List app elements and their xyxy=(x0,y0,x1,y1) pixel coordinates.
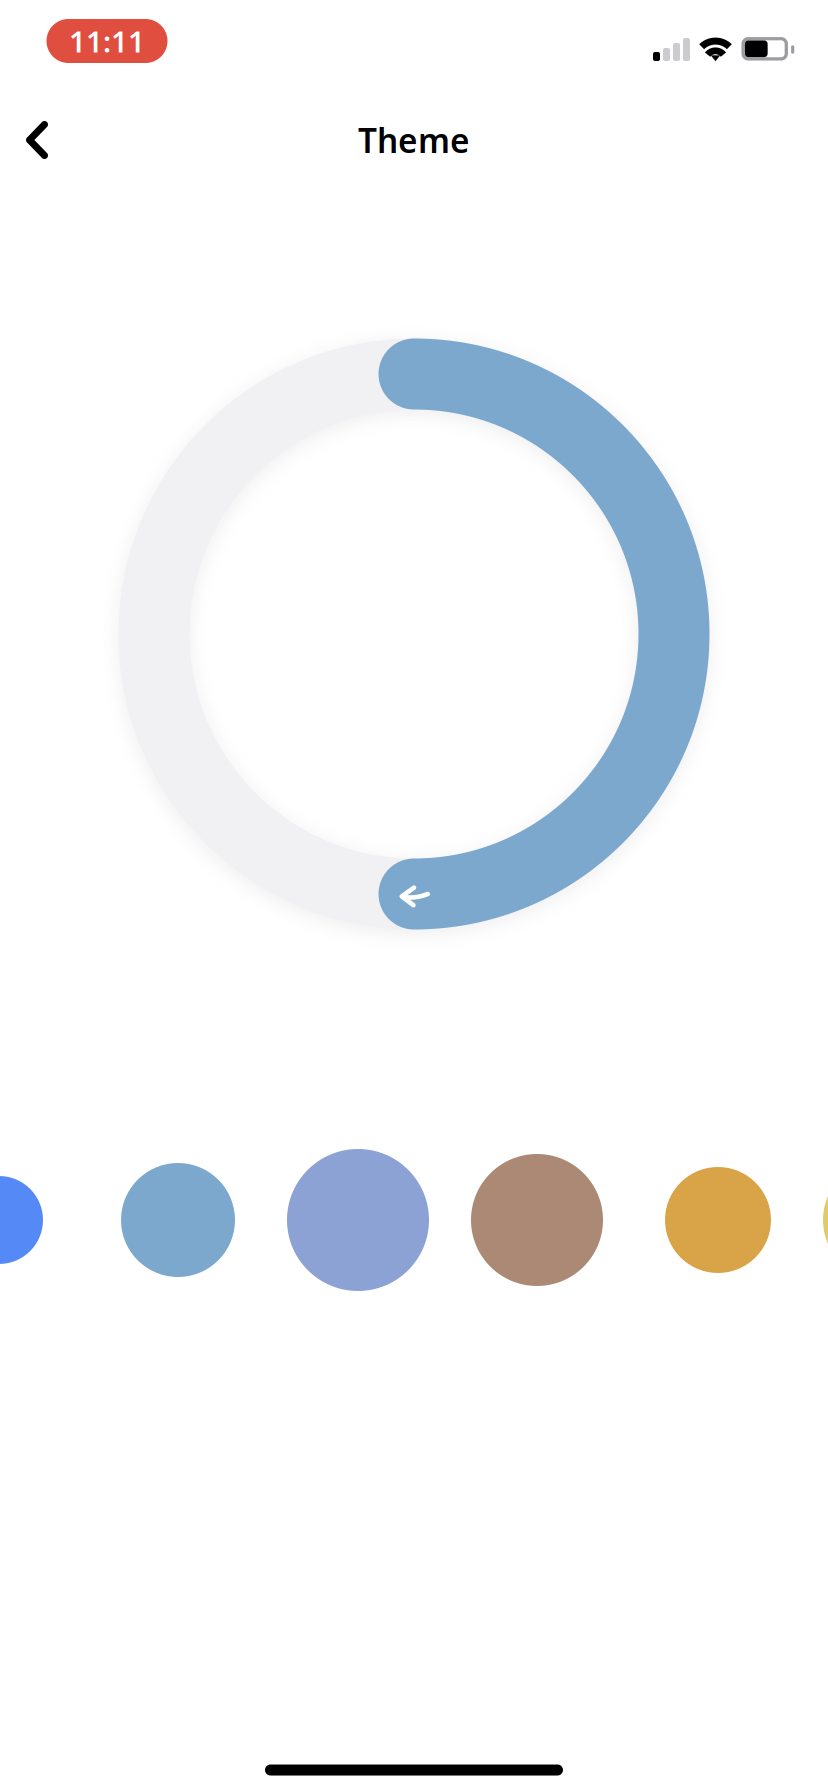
button[interactable]: Blue theme xyxy=(0,1176,43,1264)
button[interactable]: Sky theme xyxy=(121,1163,235,1277)
button[interactable]: Sand theme xyxy=(823,1160,828,1280)
button[interactable]: Amber theme xyxy=(665,1167,771,1273)
button[interactable]: Periwinkle theme xyxy=(287,1149,429,1291)
button[interactable]: Back xyxy=(0,94,83,186)
staticText: 11:11 xyxy=(69,21,145,60)
button[interactable]: Adjust theme xyxy=(378,860,449,931)
staticText: Theme xyxy=(358,118,470,162)
button[interactable]: Clay theme xyxy=(471,1154,603,1286)
